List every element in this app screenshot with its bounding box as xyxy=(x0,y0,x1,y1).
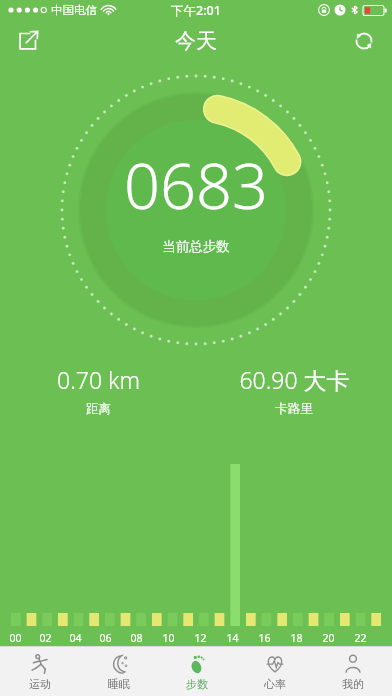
staticText: 0.70 km xyxy=(57,364,140,395)
button[interactable]: 我的 xyxy=(314,647,392,696)
staticText: 22 xyxy=(354,631,367,645)
staticText: 20 xyxy=(322,631,335,645)
button[interactable]: Refresh xyxy=(344,21,384,61)
staticText: 18 xyxy=(290,631,303,645)
button[interactable]: 步数 xyxy=(158,647,236,696)
staticText: 14 xyxy=(226,631,239,645)
staticText: 下午2:01 xyxy=(171,2,221,19)
button[interactable]: 0.70 km xyxy=(0,360,196,421)
staticText: 距离 xyxy=(86,401,111,417)
button[interactable]: 60.90 大卡 xyxy=(196,360,392,421)
staticText: 当前总步数 xyxy=(162,238,230,255)
staticText: 00 xyxy=(9,631,22,645)
staticText: 12 xyxy=(194,631,207,645)
staticText: 步数 xyxy=(186,677,208,691)
staticText: 中国电信 xyxy=(51,3,97,17)
staticText: 睡眠 xyxy=(108,677,130,691)
staticText: 06 xyxy=(99,631,112,645)
button[interactable]: 运动 xyxy=(0,647,79,696)
staticText: 10 xyxy=(162,631,175,645)
button[interactable]: 睡眠 xyxy=(79,647,158,696)
staticText: 0683 xyxy=(124,142,268,228)
button[interactable]: 心率 xyxy=(236,647,314,696)
staticText: 运动 xyxy=(29,677,51,691)
staticText: 08 xyxy=(130,631,143,645)
staticText: 卡路里 xyxy=(275,401,313,417)
staticText: 心率 xyxy=(264,677,286,691)
staticText: 04 xyxy=(69,631,82,645)
button[interactable]: Share xyxy=(8,21,48,61)
staticText: 今天 xyxy=(175,28,217,54)
staticText: 我的 xyxy=(342,677,364,691)
staticText: 16 xyxy=(258,631,271,645)
staticText: 02 xyxy=(39,631,52,645)
staticText: 60.90 大卡 xyxy=(239,364,350,395)
